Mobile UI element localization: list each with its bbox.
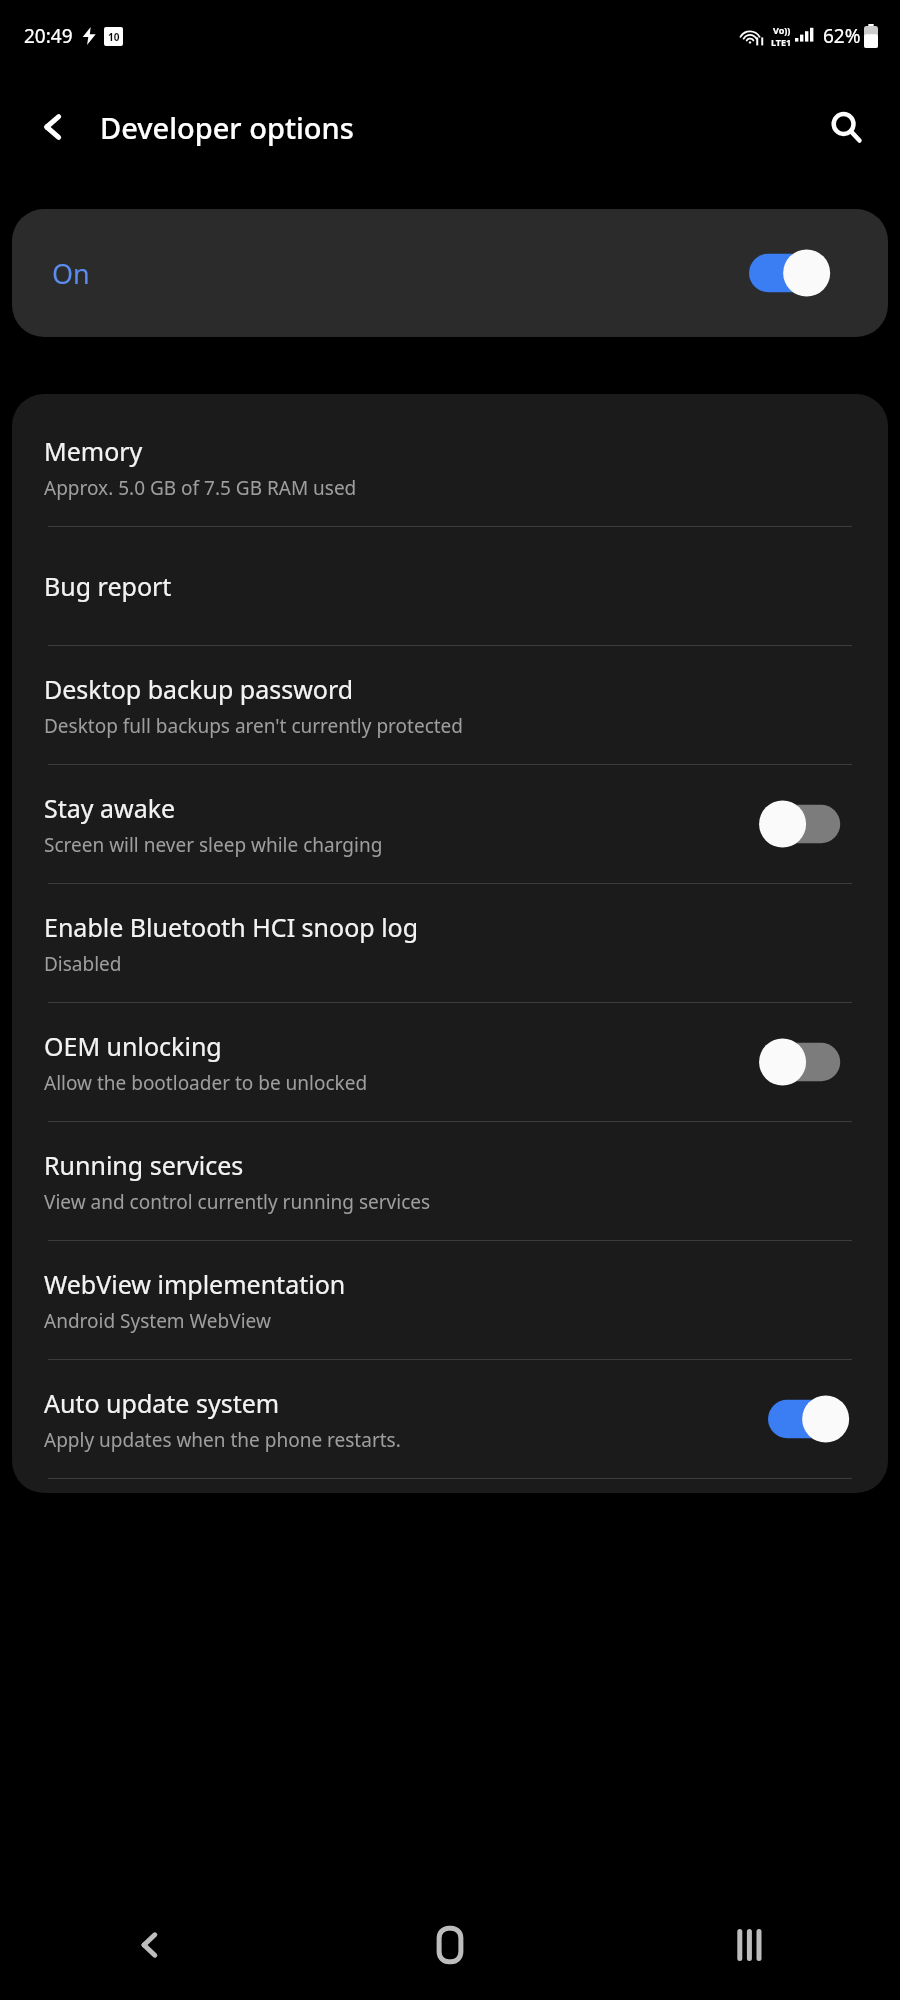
button[interactable]: On bbox=[12, 209, 888, 337]
staticText: On bbox=[52, 255, 90, 292]
button[interactable]: OEM unlocking bbox=[12, 1003, 888, 1121]
staticText: Memory bbox=[44, 434, 143, 468]
button[interactable]: Search bbox=[812, 93, 880, 161]
button[interactable]: Bug report bbox=[12, 527, 888, 645]
button[interactable]: Toggle on bbox=[768, 1395, 852, 1443]
button[interactable]: Enable Bluetooth HCI snoop log bbox=[12, 884, 888, 1002]
button[interactable]: Running services bbox=[12, 1122, 888, 1240]
staticText: Disabled bbox=[44, 951, 122, 977]
staticText: WebView implementation bbox=[44, 1267, 346, 1301]
button[interactable]: Toggle off bbox=[768, 1038, 852, 1086]
staticText: Desktop backup password bbox=[44, 672, 354, 706]
staticText: Auto update system bbox=[44, 1386, 280, 1420]
button[interactable]: Recents bbox=[600, 1890, 900, 2000]
button[interactable]: Toggle off bbox=[768, 800, 852, 848]
staticText: Developer options bbox=[100, 108, 354, 147]
staticText: Vo)) bbox=[773, 24, 791, 36]
button[interactable]: Back bbox=[20, 93, 88, 161]
staticText: 20:49 bbox=[24, 23, 73, 49]
staticText: Running services bbox=[44, 1148, 244, 1182]
staticText: OEM unlocking bbox=[44, 1029, 222, 1063]
staticText: 10 bbox=[108, 30, 120, 44]
button[interactable]: Memory bbox=[12, 408, 888, 526]
button[interactable]: WebView implementation bbox=[12, 1241, 888, 1359]
staticText: Android System WebView bbox=[44, 1308, 271, 1334]
staticText: 62% bbox=[823, 23, 861, 49]
staticText: View and control currently running servi… bbox=[44, 1189, 431, 1215]
staticText: Screen will never sleep while charging bbox=[44, 832, 383, 858]
button[interactable]: Auto update system bbox=[12, 1360, 888, 1478]
button[interactable]: Home bbox=[300, 1890, 600, 2000]
staticText: Enable Bluetooth HCI snoop log bbox=[44, 910, 419, 944]
button[interactable]: Stay awake bbox=[12, 765, 888, 883]
button[interactable]: Back bbox=[0, 1890, 300, 2000]
button[interactable]: Desktop backup password bbox=[12, 646, 888, 764]
staticText: Approx. 5.0 GB of 7.5 GB RAM used bbox=[44, 475, 357, 501]
staticText: Desktop full backups aren't currently pr… bbox=[44, 713, 464, 739]
staticText: Bug report bbox=[44, 569, 172, 603]
button[interactable]: Toggle on bbox=[749, 249, 833, 297]
staticText: Stay awake bbox=[44, 791, 176, 825]
staticText: LTE1 bbox=[771, 36, 792, 48]
staticText: Apply updates when the phone restarts. bbox=[44, 1427, 401, 1453]
staticText: Allow the bootloader to be unlocked bbox=[44, 1070, 368, 1096]
